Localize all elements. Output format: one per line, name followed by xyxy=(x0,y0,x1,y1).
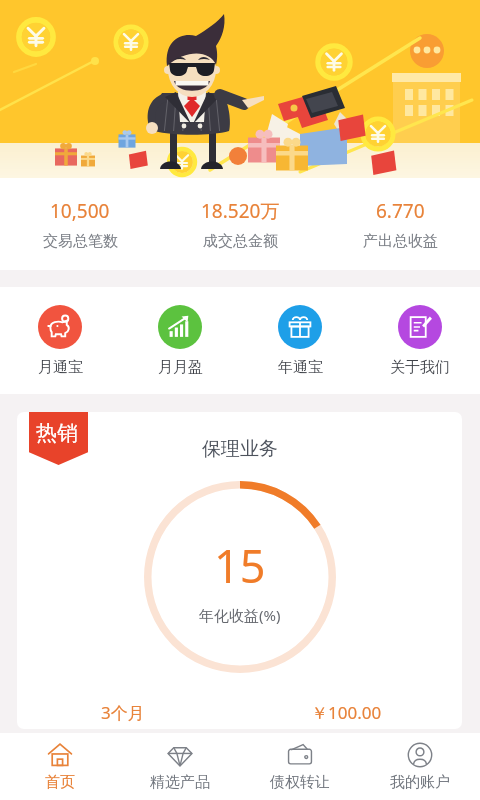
staticText: 年通宝 xyxy=(278,358,323,377)
staticText: 关于我们 xyxy=(390,358,450,377)
button[interactable]: 年通宝 xyxy=(240,305,360,377)
staticText: 6.770 xyxy=(376,198,425,224)
staticText: ￥100.00 xyxy=(311,701,382,724)
button[interactable]: 关于我们 xyxy=(360,305,480,377)
staticText: 18.520万 xyxy=(201,198,280,224)
staticText: 15 xyxy=(214,535,266,596)
staticText: 我的账户 xyxy=(390,773,450,792)
staticText: 保理业务 xyxy=(202,437,278,461)
button[interactable]: 月月盈 xyxy=(120,305,240,377)
staticText: 月通宝 xyxy=(38,358,83,377)
staticText: 年化收益(%) xyxy=(199,605,281,625)
staticText: 精选产品 xyxy=(150,773,210,792)
button[interactable]: 我的账户 xyxy=(360,742,480,792)
staticText: 月月盈 xyxy=(158,358,203,377)
button[interactable]: 热销 xyxy=(17,412,462,729)
staticText: 10,500 xyxy=(50,198,110,224)
staticText: 成交总金额 xyxy=(203,232,278,251)
button[interactable]: 月通宝 xyxy=(0,305,120,377)
staticText: 热销 xyxy=(36,420,78,446)
staticText: 产出总收益 xyxy=(363,232,438,251)
staticText: 交易总笔数 xyxy=(43,232,118,251)
button[interactable]: 首页 xyxy=(0,742,120,792)
staticText: 债权转让 xyxy=(270,773,330,792)
staticText: 3个月 xyxy=(101,701,145,724)
button[interactable]: 精选产品 xyxy=(120,742,240,792)
staticText: 首页 xyxy=(45,773,75,792)
button[interactable]: 债权转让 xyxy=(240,742,360,792)
